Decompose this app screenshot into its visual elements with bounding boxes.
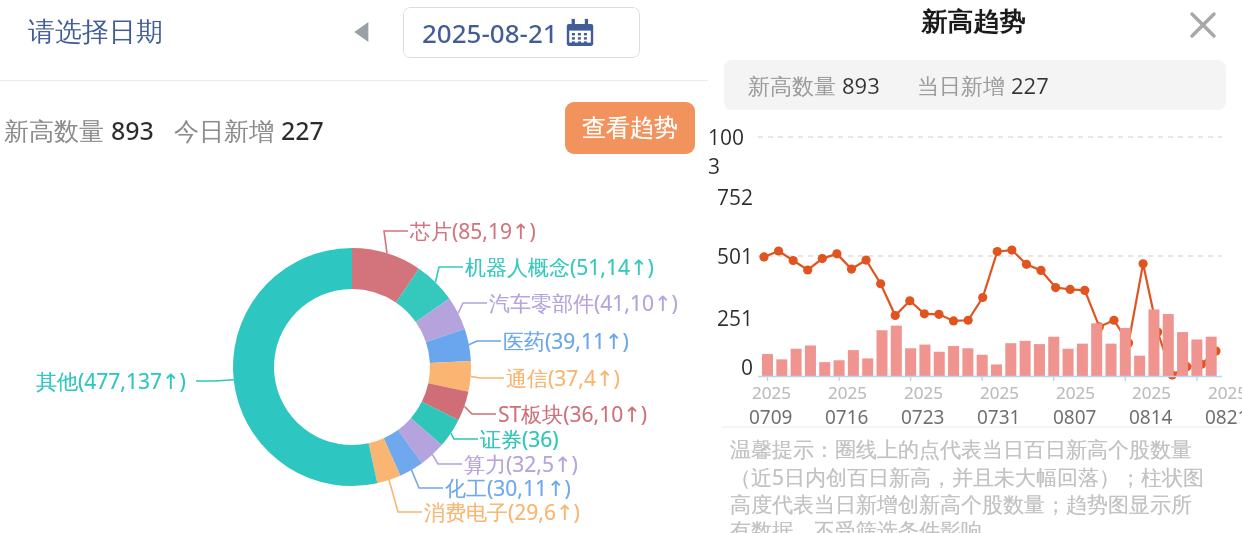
staticText: 0731 bbox=[977, 404, 1021, 430]
staticText: 化工(30,11↑) bbox=[445, 474, 571, 503]
staticText: 0814 bbox=[1129, 404, 1173, 430]
staticText: 1003 bbox=[708, 123, 754, 181]
staticText: 新高趋势 bbox=[921, 6, 1025, 39]
staticText: 通信(37,4↑) bbox=[506, 364, 620, 393]
staticText: 医药(39,11↑) bbox=[503, 327, 629, 356]
staticText: 2025 bbox=[1056, 381, 1095, 404]
staticText: 新高数量 bbox=[4, 113, 111, 147]
staticText: 消费电子(29,6↑) bbox=[424, 498, 580, 527]
staticText: 机器人概念(51,14↑) bbox=[465, 253, 654, 282]
staticText: 227 bbox=[1011, 70, 1049, 100]
staticText: 251 bbox=[717, 304, 754, 333]
button[interactable]: Previous day bbox=[342, 10, 386, 54]
staticText: 2025-08-21 bbox=[422, 15, 558, 50]
staticText: 证券(36) bbox=[480, 425, 559, 454]
staticText: 2025 bbox=[752, 381, 791, 404]
staticText: 2025 bbox=[904, 381, 943, 404]
button[interactable]: 2025-08-21 bbox=[403, 7, 640, 58]
staticText: 893 bbox=[842, 70, 880, 100]
button[interactable]: 查看趋势 bbox=[565, 102, 695, 154]
staticText: 0821 bbox=[1205, 404, 1242, 430]
staticText: 算力(32,5↑) bbox=[464, 450, 578, 479]
staticText: 0807 bbox=[1053, 404, 1097, 430]
staticText: 温馨提示：圈线上的点代表当日百日新高个股数量 bbox=[730, 437, 1192, 463]
staticText: 752 bbox=[717, 183, 754, 212]
staticText: 汽车零部件(41,10↑) bbox=[489, 289, 678, 318]
button[interactable]: 请选择日期 bbox=[28, 15, 163, 49]
staticText: 芯片(85,19↑) bbox=[410, 217, 536, 246]
staticText: （近5日内创百日新高，并且未大幅回落）；柱状图 bbox=[730, 463, 1205, 492]
staticText: 0709 bbox=[749, 404, 793, 430]
button[interactable]: Close bbox=[1180, 2, 1226, 48]
staticText: 查看趋势 bbox=[582, 113, 678, 143]
staticText: 今日新增 bbox=[174, 113, 281, 147]
staticText: 227 bbox=[281, 113, 324, 147]
staticText: 新高数量 bbox=[748, 70, 842, 100]
staticText: ST板块(36,10↑) bbox=[498, 400, 648, 429]
staticText: 当日新增 bbox=[917, 70, 1011, 100]
staticText: 2025 bbox=[828, 381, 867, 404]
staticText: 0723 bbox=[901, 404, 945, 430]
staticText: 2025 bbox=[1208, 381, 1242, 404]
staticText: 0716 bbox=[825, 404, 869, 430]
staticText: 高度代表当日新增创新高个股数量；趋势图显示所 bbox=[730, 492, 1192, 518]
staticText: 2025 bbox=[1132, 381, 1171, 404]
staticText: 893 bbox=[111, 113, 154, 147]
staticText: 有数据，不受筛选条件影响 bbox=[730, 518, 982, 533]
staticText: 其他(477,137↑) bbox=[36, 367, 186, 396]
staticText: 501 bbox=[717, 242, 754, 271]
staticText: 2025 bbox=[980, 381, 1019, 404]
staticText: 0 bbox=[741, 353, 754, 382]
